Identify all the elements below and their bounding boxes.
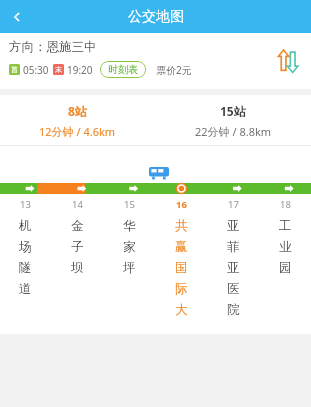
staticText: 业 xyxy=(279,239,292,255)
staticText: 16 xyxy=(176,198,187,211)
staticText: 华 xyxy=(123,218,136,234)
staticText: 际 xyxy=(175,281,188,297)
staticText: 场 xyxy=(19,239,32,255)
staticText: 道 xyxy=(19,281,32,297)
button[interactable]: 亚 xyxy=(207,218,259,330)
button[interactable]: 时刻表 xyxy=(100,61,146,78)
button[interactable]: 共 xyxy=(155,218,207,330)
staticText: 隧 xyxy=(19,260,32,276)
staticText: 方向：恩施三中 xyxy=(9,39,97,55)
staticText: 金 xyxy=(71,218,84,234)
button[interactable]: 机 xyxy=(0,218,51,330)
button[interactable]: 工 xyxy=(259,218,311,330)
staticText: 亚 xyxy=(227,260,240,276)
staticText: 机 xyxy=(19,218,32,234)
staticText: 末 xyxy=(55,65,62,74)
staticText: 18 xyxy=(280,198,291,211)
staticText: 园 xyxy=(279,260,292,276)
staticText: 05:30 xyxy=(23,63,49,77)
staticText: 公交地图 xyxy=(128,8,184,26)
staticText: 13 xyxy=(20,198,31,211)
staticText: 家 xyxy=(123,239,136,255)
button[interactable]: Reverse direction xyxy=(273,46,303,76)
staticText: 8站 xyxy=(68,103,87,119)
staticText: 医 xyxy=(227,281,240,297)
staticText: 票价2元 xyxy=(156,63,192,77)
staticText: 15 xyxy=(124,198,135,211)
staticText: 坝 xyxy=(71,260,84,276)
button[interactable]: 华 xyxy=(103,218,155,330)
staticText: 12分钟 / 4.6km xyxy=(39,124,116,139)
staticText: 院 xyxy=(227,302,240,318)
staticText: 工 xyxy=(279,218,292,234)
staticText: 坪 xyxy=(123,260,136,276)
staticText: 19:20 xyxy=(67,63,93,77)
staticText: 首 xyxy=(11,65,18,74)
staticText: 赢 xyxy=(175,239,188,255)
staticText: 菲 xyxy=(227,239,240,255)
staticText: 22分钟 / 8.8km xyxy=(195,124,272,139)
button[interactable]: 金 xyxy=(51,218,103,330)
button[interactable]: Back xyxy=(0,0,34,33)
staticText: 时刻表 xyxy=(108,63,138,76)
staticText: 亚 xyxy=(227,218,240,234)
staticText: 大 xyxy=(175,302,188,318)
staticText: 15站 xyxy=(220,103,246,119)
staticText: 共 xyxy=(175,218,188,234)
staticText: 国 xyxy=(175,260,188,276)
staticText: 14 xyxy=(72,198,83,211)
staticText: 子 xyxy=(71,239,84,255)
staticText: 17 xyxy=(228,198,239,211)
